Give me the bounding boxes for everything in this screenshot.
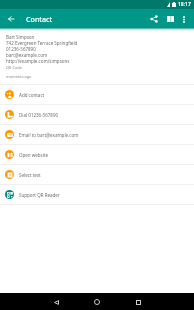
staticText: bart@example.com bbox=[6, 52, 48, 58]
button[interactable]: More options bbox=[176, 11, 192, 27]
staticText: http://example.com/simpsons bbox=[6, 58, 70, 64]
button[interactable]: Select text bbox=[0, 165, 194, 184]
button[interactable]: Home bbox=[90, 295, 104, 309]
staticText: Email to bart@example.com bbox=[19, 132, 79, 138]
button[interactable]: Navigate up bbox=[3, 11, 19, 27]
button[interactable]: Share bbox=[146, 11, 162, 27]
staticText: Select text bbox=[19, 172, 41, 178]
staticText: Support QR Reader bbox=[19, 192, 60, 198]
button[interactable]: Email to bart@example.com bbox=[0, 125, 194, 144]
button[interactable]: Dial 01236-567890 bbox=[0, 105, 194, 124]
staticText: moments ago bbox=[6, 74, 32, 79]
button[interactable]: Add contact bbox=[0, 85, 194, 104]
button[interactable]: Support QR Reader bbox=[0, 185, 194, 204]
staticText: 01236-567890 bbox=[6, 46, 36, 52]
staticText: 742 Evergreen Terrace Springfield bbox=[6, 40, 78, 46]
staticText: Open website bbox=[19, 152, 49, 158]
button[interactable]: Recent apps bbox=[131, 295, 145, 309]
staticText: Dial 01236-567890 bbox=[19, 112, 59, 118]
staticText: Bart Simpson bbox=[6, 34, 35, 40]
staticText: 18:17 bbox=[178, 1, 191, 8]
button[interactable]: Back bbox=[49, 295, 63, 309]
staticText: Add contact bbox=[19, 92, 45, 98]
button[interactable]: Open book bbox=[162, 11, 178, 27]
button[interactable]: Open website bbox=[0, 145, 194, 164]
staticText: Contact bbox=[26, 14, 53, 24]
staticText: QR Code bbox=[6, 65, 22, 70]
